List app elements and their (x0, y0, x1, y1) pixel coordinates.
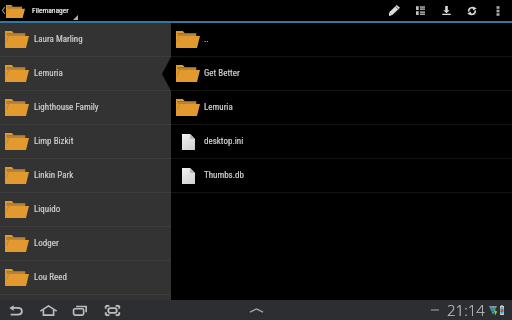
button[interactable]: desktop.ini (171, 125, 512, 159)
button[interactable]: Screenshot (96, 300, 128, 320)
staticText: Liquido (34, 204, 61, 215)
button[interactable]: Lodger (0, 227, 171, 261)
staticText: Laura Marling (34, 34, 83, 45)
staticText: Linkin Park (34, 170, 74, 181)
button[interactable]: Limp Bizkit (0, 125, 171, 159)
button[interactable]: More options (485, 0, 511, 21)
button[interactable]: Get Better (171, 57, 512, 91)
other: Up (2, 7, 5, 14)
button[interactable]: Lemuria (0, 57, 171, 91)
staticText: Filemanager (32, 6, 69, 15)
button[interactable]: .. (171, 23, 512, 57)
staticText: Lighthouse Family (34, 102, 99, 113)
button[interactable]: Home (32, 300, 64, 320)
button[interactable]: Up (0, 0, 78, 21)
button[interactable]: Liquido (0, 193, 171, 227)
staticText: Lou Reed (34, 272, 67, 283)
button[interactable]: Refresh (459, 0, 485, 21)
staticText: Lemuria (204, 102, 233, 113)
staticText: Thumbs.db (204, 170, 244, 181)
button[interactable]: Edit (381, 0, 407, 21)
button[interactable]: Thumbs.db (171, 159, 512, 193)
button[interactable]: Show keyboard (244, 300, 268, 320)
staticText: Lemuria (34, 68, 63, 79)
staticText: 21:14 (447, 300, 485, 320)
staticText: Lodger (34, 238, 59, 249)
button[interactable]: Back (0, 300, 32, 320)
button[interactable]: Lighthouse Family (0, 91, 171, 125)
staticText: desktop.ini (204, 136, 244, 147)
staticText: Get Better (204, 68, 240, 79)
button[interactable]: Lou Reed (0, 261, 171, 295)
button[interactable]: Download (433, 0, 459, 21)
staticText: Limp Bizkit (34, 136, 74, 147)
button[interactable]: Linkin Park (0, 159, 171, 193)
button[interactable]: Lemuria (171, 91, 512, 125)
button[interactable]: Laura Marling (0, 23, 171, 57)
staticText: .. (204, 34, 209, 45)
button[interactable]: List view (407, 0, 433, 21)
button[interactable]: Recents (64, 300, 96, 320)
